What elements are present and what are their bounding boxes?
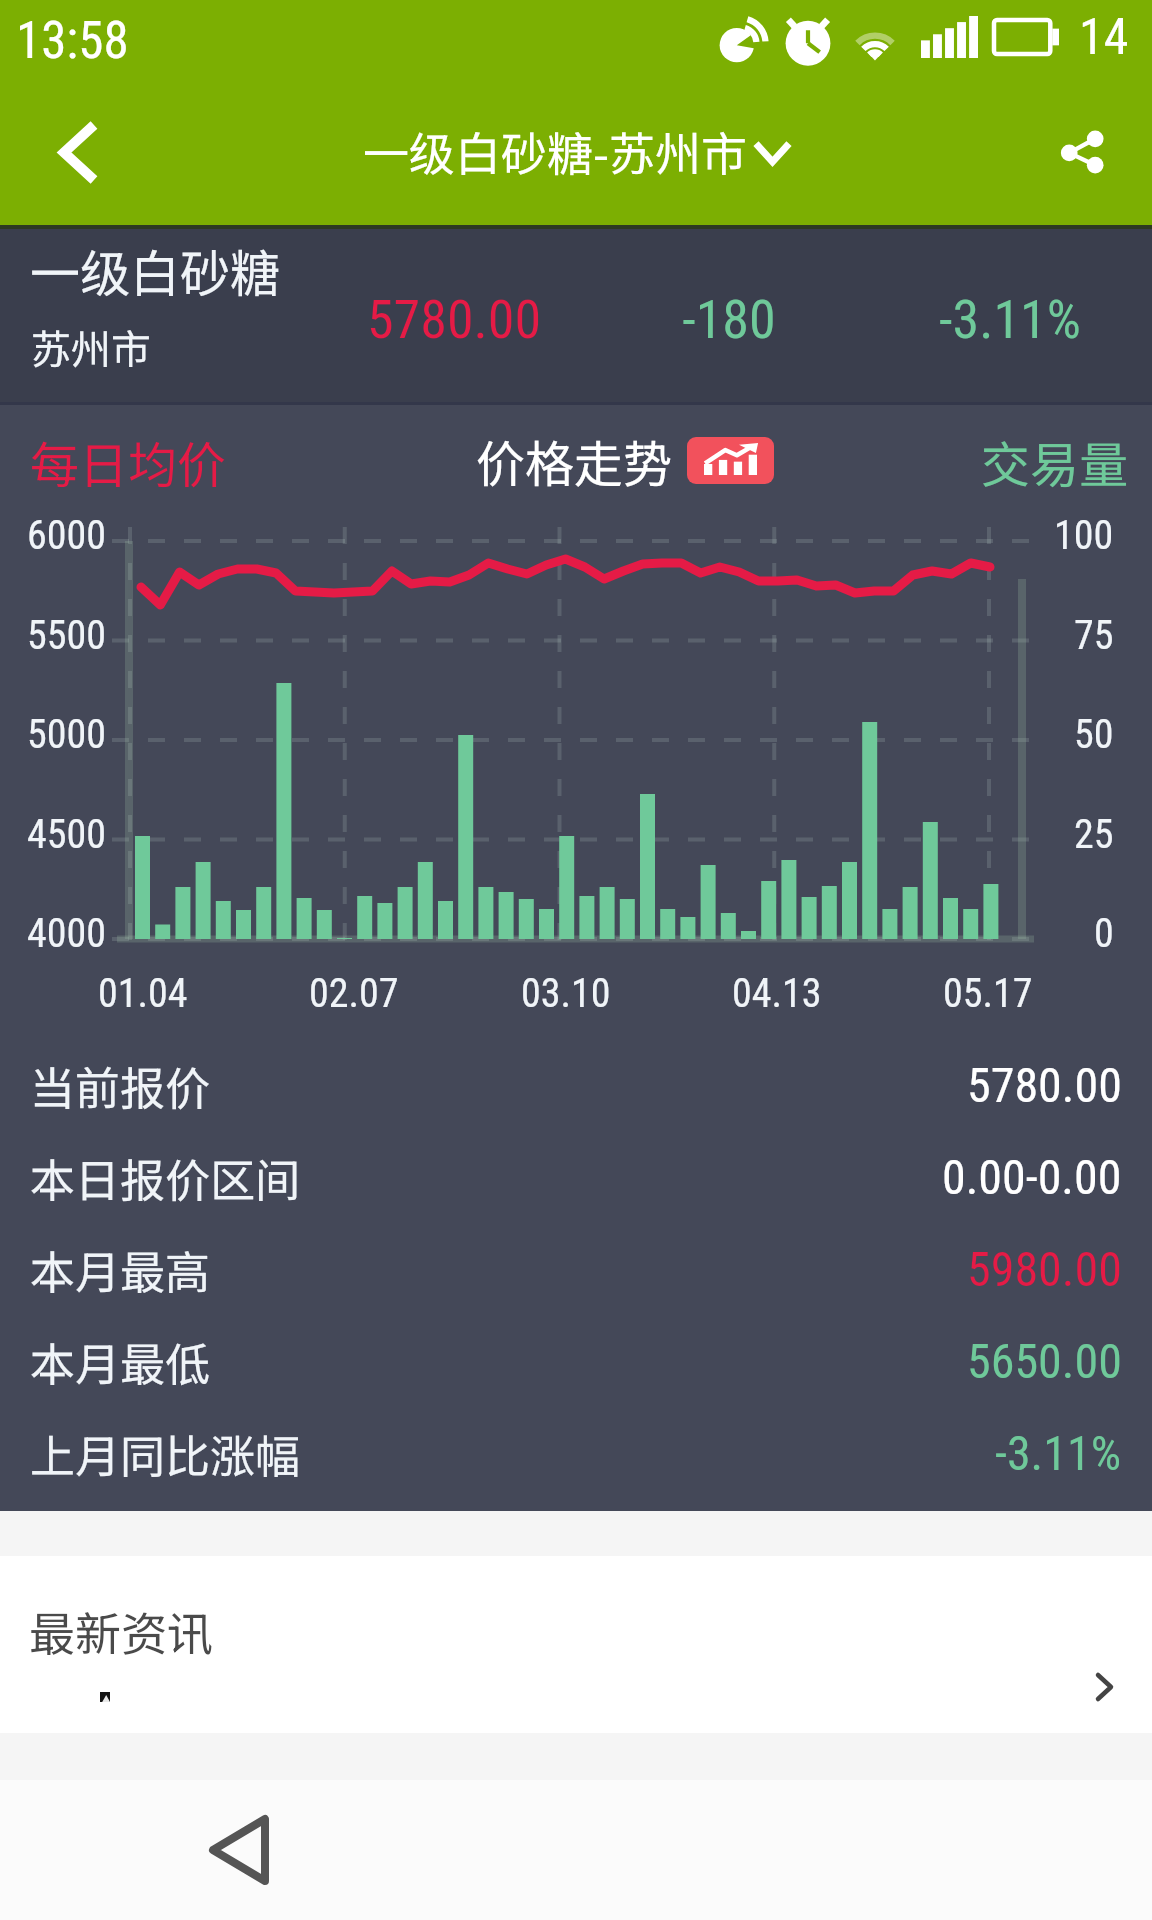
staticText: 0.00-0.00 bbox=[942, 1149, 1122, 1205]
staticText: 25 bbox=[1074, 811, 1114, 858]
staticText: -180 bbox=[609, 288, 849, 351]
staticText: 上月同比涨幅 bbox=[30, 1421, 301, 1486]
staticText: 13:58 bbox=[16, 11, 129, 71]
staticText: 苏州市 bbox=[31, 318, 151, 376]
staticText: 100 bbox=[1054, 512, 1114, 559]
button[interactable]: Share bbox=[1012, 82, 1152, 222]
staticText: 5500 bbox=[27, 612, 106, 659]
button[interactable]: 本日报价区间 bbox=[0, 1131, 1152, 1223]
staticText: 价格走势 bbox=[476, 425, 673, 496]
staticText: 75 bbox=[1074, 612, 1114, 659]
staticText: 4000 bbox=[27, 910, 106, 957]
staticText: 一级白砂糖-苏州市 bbox=[363, 118, 747, 185]
button[interactable]: 本月最低 bbox=[0, 1315, 1152, 1407]
staticText: -3.11% bbox=[995, 1425, 1122, 1481]
staticText: 4500 bbox=[27, 811, 106, 858]
staticText: 最新资讯 bbox=[29, 1598, 213, 1665]
button[interactable]: 当前报价 bbox=[0, 1039, 1152, 1131]
staticText: 03.10 bbox=[521, 970, 611, 1017]
staticText: 6000 bbox=[27, 512, 106, 559]
staticText: 5980.00 bbox=[967, 1241, 1122, 1297]
button[interactable]: 上月同比涨幅 bbox=[0, 1407, 1152, 1499]
staticText: 每日均价 bbox=[30, 426, 227, 497]
button[interactable]: 最新资讯 bbox=[0, 1556, 1152, 1733]
staticText: 当前报价 bbox=[30, 1053, 211, 1118]
staticText: 本月最低 bbox=[30, 1329, 211, 1394]
staticText: 02.07 bbox=[309, 970, 399, 1017]
staticText: 5780.00 bbox=[334, 288, 574, 351]
staticText: 本月最高 bbox=[30, 1237, 211, 1302]
staticText: 0 bbox=[1094, 910, 1114, 957]
button[interactable]: Back bbox=[184, 1795, 294, 1905]
staticText: -3.11% bbox=[890, 288, 1130, 351]
staticText: 5780.00 bbox=[967, 1057, 1122, 1113]
button[interactable]: 本月最高 bbox=[0, 1223, 1152, 1315]
staticText: 14 bbox=[1079, 8, 1129, 67]
staticText: 50 bbox=[1074, 711, 1114, 758]
staticText: 本日报价区间 bbox=[30, 1145, 301, 1210]
staticText: 5000 bbox=[27, 711, 106, 758]
staticText: 一级白砂糖 bbox=[30, 234, 280, 306]
staticText: 05.17 bbox=[943, 970, 1033, 1017]
staticText: 04.13 bbox=[732, 970, 822, 1017]
staticText: 交易量 bbox=[981, 426, 1129, 497]
staticText: 01.04 bbox=[98, 970, 188, 1017]
staticText: 5650.00 bbox=[967, 1333, 1122, 1389]
button[interactable]: 一级白砂糖-苏州市 bbox=[363, 118, 790, 185]
button[interactable]: Back bbox=[14, 87, 144, 217]
